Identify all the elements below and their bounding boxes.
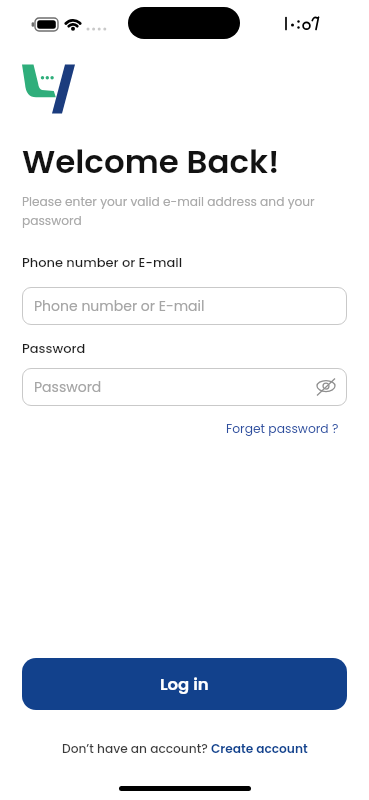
staticText: Password	[34, 377, 102, 397]
button[interactable]: Forget password ?	[226, 420, 339, 437]
staticText: Don’t have an account? Create account	[62, 740, 308, 757]
button[interactable]: Don’t have an account? Create account	[22, 740, 347, 757]
staticText: Password	[22, 339, 86, 357]
button[interactable]: Password	[34, 368, 338, 406]
staticText: Forget password ?	[226, 420, 339, 437]
staticText: Log in	[160, 673, 209, 696]
staticText: Phone number or E-mail	[22, 253, 183, 271]
button[interactable]: Phone number or E-mail	[34, 287, 338, 325]
staticText: Phone number or E-mail	[34, 296, 205, 316]
staticText: Please enter your valid e-mail address a…	[22, 193, 315, 229]
staticText: Welcome Back!	[22, 139, 280, 185]
button[interactable]: Log in	[22, 658, 347, 710]
